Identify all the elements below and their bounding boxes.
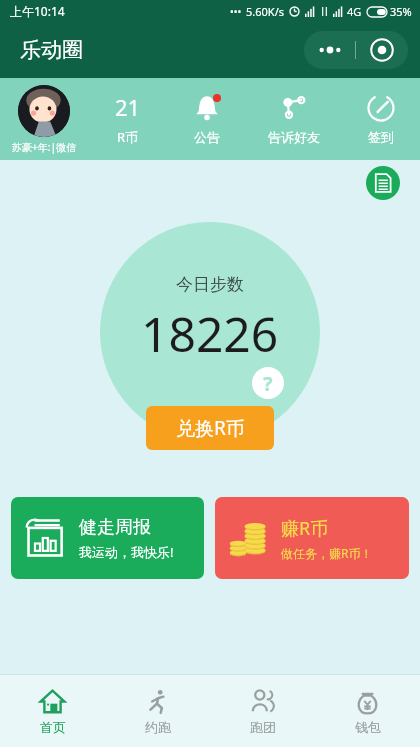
button[interactable]: 告诉好友	[246, 78, 341, 160]
staticText: 公告	[194, 129, 220, 145]
staticText: 我运动，我快乐!	[79, 543, 174, 561]
staticText: 兑换R币	[176, 415, 245, 441]
staticText: ?	[263, 370, 273, 397]
button[interactable]: 赚R币	[215, 497, 409, 579]
staticText: 跑团	[250, 719, 276, 735]
button[interactable]: Help	[252, 367, 284, 399]
button[interactable]: More	[304, 31, 355, 69]
staticText: 约跑	[145, 719, 171, 735]
staticText: 首页	[40, 719, 66, 735]
staticText: 健走周报	[79, 516, 151, 539]
staticText: 上午10:14	[10, 3, 65, 19]
button[interactable]: Record	[356, 31, 408, 69]
button[interactable]: 健走周报	[11, 497, 204, 579]
button[interactable]: 首页	[0, 675, 105, 747]
button[interactable]: 苏豪+年:|微信	[0, 85, 88, 154]
staticText: 5.60K/s	[246, 4, 284, 19]
button[interactable]: 21	[88, 78, 167, 160]
staticText: 4G	[347, 4, 362, 19]
button[interactable]: 公告	[167, 78, 246, 160]
staticText: 签到	[368, 129, 394, 145]
staticText: 18226	[141, 301, 279, 366]
staticText: 赚R币	[281, 516, 329, 541]
staticText: •••	[230, 5, 242, 19]
staticText: 今日步数	[176, 274, 244, 295]
button[interactable]: Report	[366, 166, 400, 200]
button[interactable]: 签到	[341, 78, 420, 160]
button[interactable]: 约跑	[105, 675, 210, 747]
button[interactable]: 兑换R币	[146, 406, 274, 450]
button[interactable]: 跑团	[210, 675, 315, 747]
staticText: 做任务，赚R币！	[281, 545, 373, 561]
staticText: 钱包	[355, 719, 381, 735]
staticText: R币	[117, 128, 139, 146]
button[interactable]: 钱包	[315, 675, 420, 747]
staticText: 告诉好友	[268, 129, 320, 145]
staticText: 35%	[390, 4, 412, 19]
staticText: 苏豪+年:|微信	[12, 140, 76, 154]
staticText: 21	[115, 92, 141, 122]
staticText: 乐动圈	[20, 37, 83, 63]
